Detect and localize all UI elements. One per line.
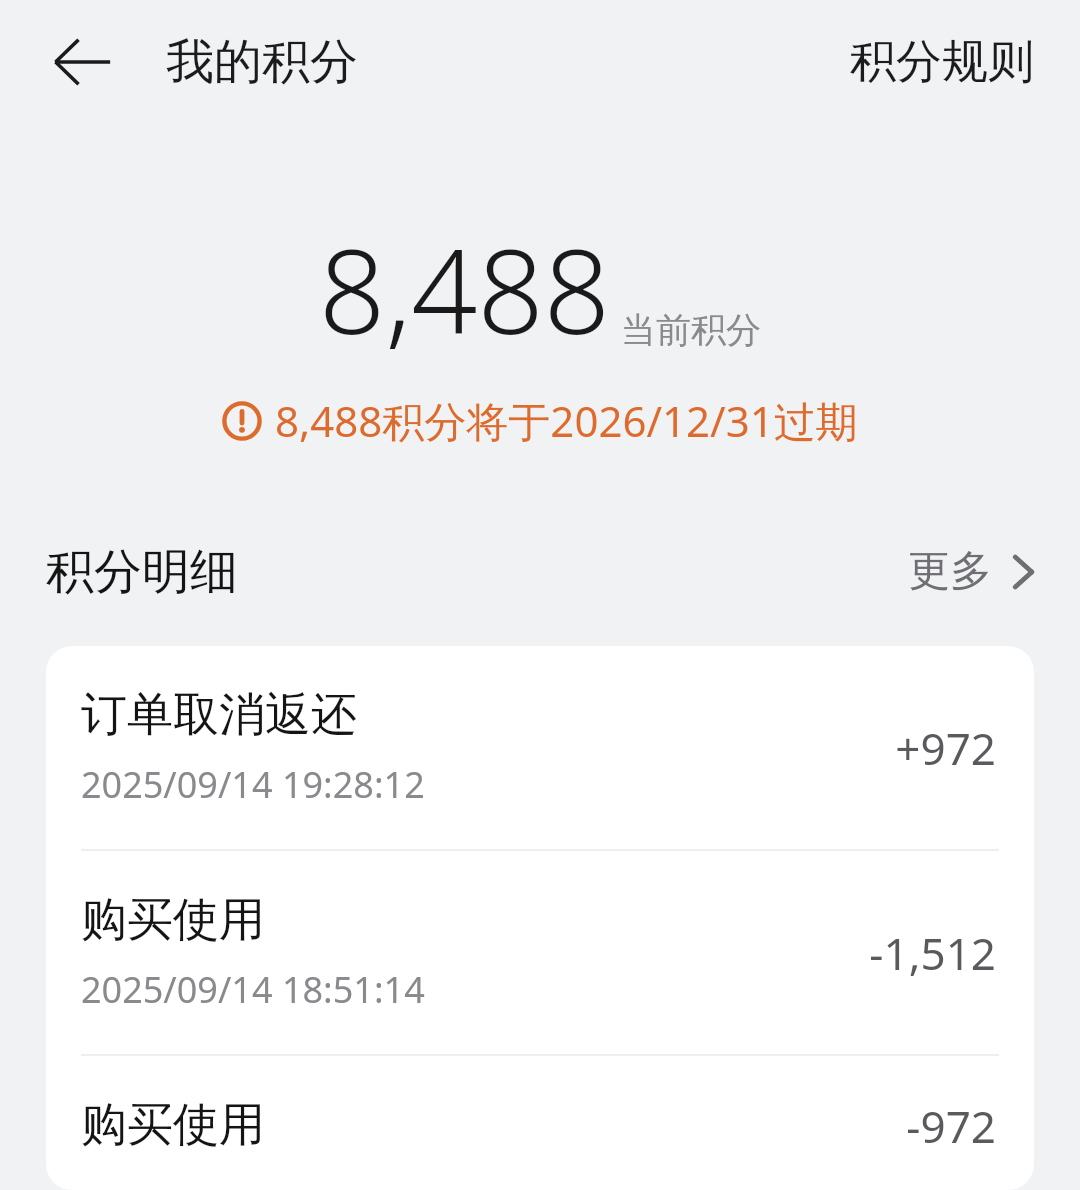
- button[interactable]: Back: [33, 14, 129, 110]
- button[interactable]: 购买使用: [46, 851, 1034, 1054]
- staticText: 2025/09/14 18:51:14: [81, 965, 425, 1014]
- staticText: 积分明细: [46, 542, 238, 602]
- staticText: 购买使用: [81, 1096, 265, 1150]
- staticText: 2025/09/14 19:28:12: [81, 760, 425, 809]
- staticText: 我的积分: [166, 32, 358, 92]
- staticText: 8,488积分将于2026/12/31过期: [275, 392, 858, 449]
- staticText: +972: [895, 718, 996, 778]
- staticText: 订单取消返还: [81, 686, 357, 744]
- staticText: 当前积分: [621, 308, 761, 352]
- button[interactable]: 积分规则: [826, 19, 1058, 105]
- staticText: -972: [906, 1096, 996, 1150]
- button[interactable]: 更多: [902, 537, 1042, 606]
- staticText: 更多: [908, 545, 992, 598]
- staticText: 积分规则: [850, 33, 1034, 91]
- button[interactable]: 订单取消返还: [46, 646, 1034, 849]
- staticText: 购买使用: [81, 891, 265, 949]
- staticText: 8,488: [319, 210, 611, 368]
- staticText: -1,512: [869, 923, 996, 983]
- button[interactable]: 购买使用: [46, 1056, 1034, 1190]
